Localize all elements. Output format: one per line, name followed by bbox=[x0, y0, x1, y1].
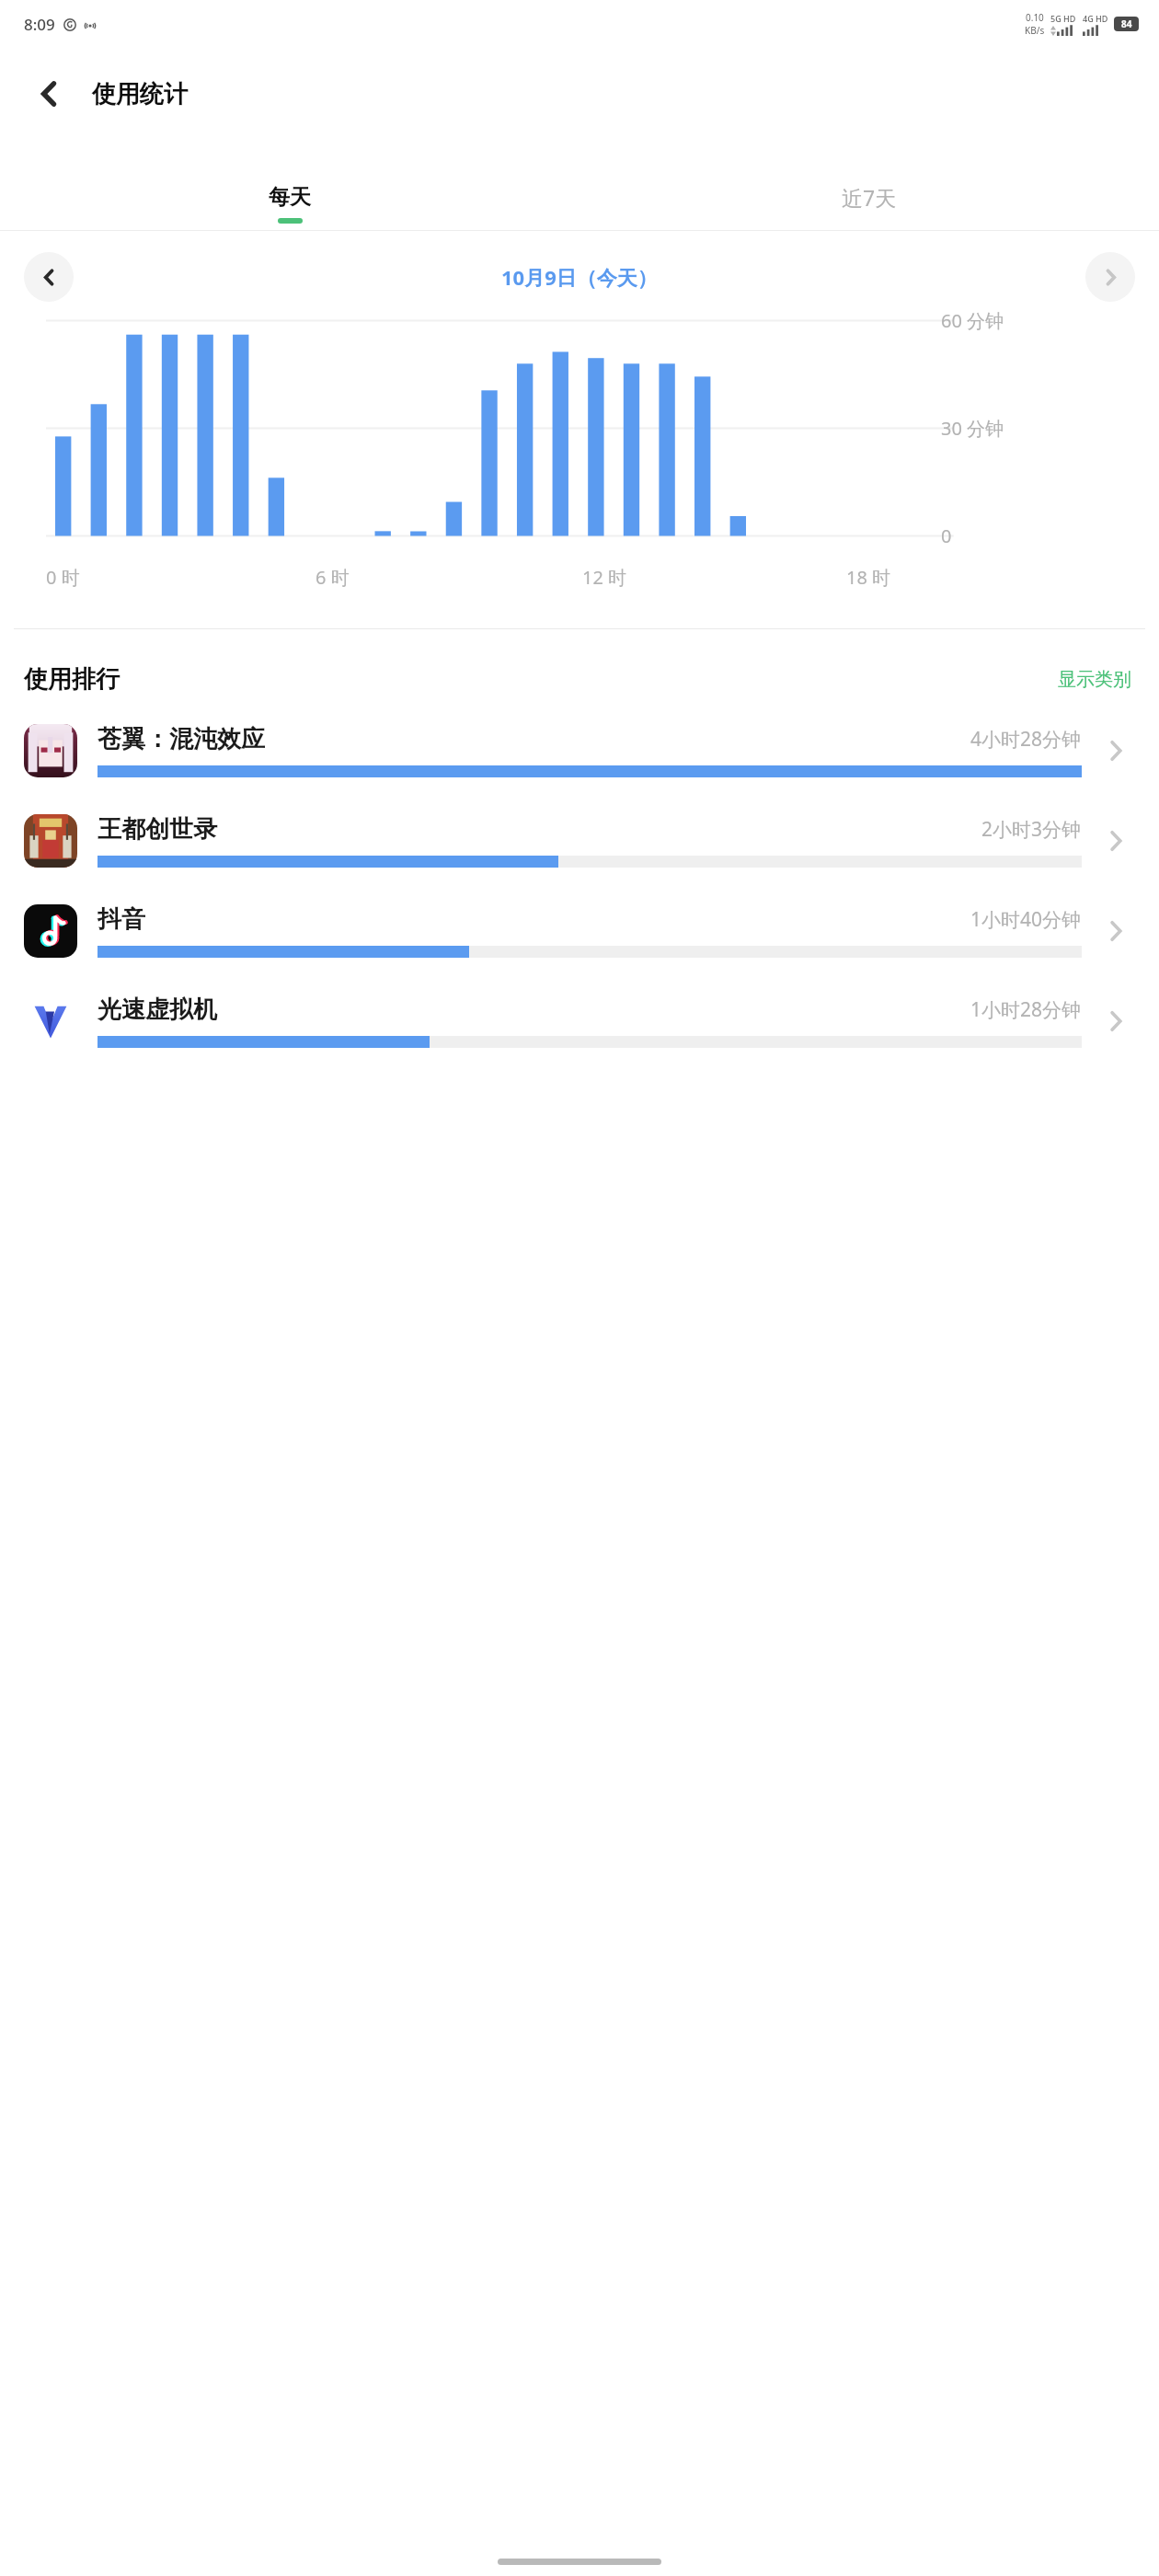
staticText: 显示类别 bbox=[1058, 668, 1131, 691]
button[interactable]: Back bbox=[20, 64, 79, 123]
staticText: 60 分钟 bbox=[941, 308, 1004, 333]
staticText: 0.10 bbox=[1026, 11, 1044, 24]
staticText: 0 bbox=[941, 523, 952, 548]
staticText: 光速虚拟机 bbox=[98, 995, 217, 1025]
staticText: 6 时 bbox=[316, 565, 350, 590]
staticText: 每天 bbox=[269, 184, 311, 211]
staticText: 18 时 bbox=[846, 565, 891, 590]
staticText: 1小时28分钟 bbox=[970, 996, 1082, 1023]
staticText: 4小时28分钟 bbox=[970, 726, 1082, 753]
button[interactable]: 苍翼：混沌效应 bbox=[0, 724, 1159, 777]
staticText: 30 分钟 bbox=[941, 416, 1004, 441]
other: App details bbox=[1096, 912, 1135, 950]
staticText: 使用统计 bbox=[92, 79, 188, 109]
staticText: 1小时40分钟 bbox=[970, 906, 1082, 933]
staticText: 12 时 bbox=[582, 565, 627, 590]
button[interactable]: 光速虚拟机 bbox=[0, 995, 1159, 1048]
staticText: 5G HD bbox=[1050, 13, 1076, 24]
staticText: 苍翼：混沌效应 bbox=[98, 724, 265, 754]
staticText: 使用排行 bbox=[24, 664, 120, 695]
button[interactable]: 抖音 bbox=[0, 904, 1159, 958]
staticText: 抖音 bbox=[98, 904, 145, 935]
staticText: 王都创世录 bbox=[98, 814, 217, 845]
button[interactable]: 近7天 bbox=[579, 177, 1159, 230]
staticText: 8:09 bbox=[24, 14, 55, 35]
button[interactable]: 每天 bbox=[0, 177, 579, 230]
button[interactable]: Previous day bbox=[24, 252, 74, 302]
staticText: 4G HD bbox=[1083, 13, 1108, 24]
other: App details bbox=[1096, 1002, 1135, 1041]
staticText: 84 bbox=[1121, 17, 1132, 30]
staticText: 近7天 bbox=[842, 183, 897, 212]
other: App details bbox=[1096, 822, 1135, 860]
staticText: KB/s bbox=[1025, 24, 1045, 37]
staticText: 0 时 bbox=[46, 565, 80, 590]
staticText: 10月9日（今天） bbox=[501, 263, 658, 291]
button[interactable]: 显示类别 bbox=[1054, 662, 1135, 696]
other: App details bbox=[1096, 731, 1135, 770]
staticText: 2小时3分钟 bbox=[981, 816, 1082, 843]
button[interactable]: 王都创世录 bbox=[0, 814, 1159, 868]
button[interactable]: Next day bbox=[1085, 252, 1135, 302]
